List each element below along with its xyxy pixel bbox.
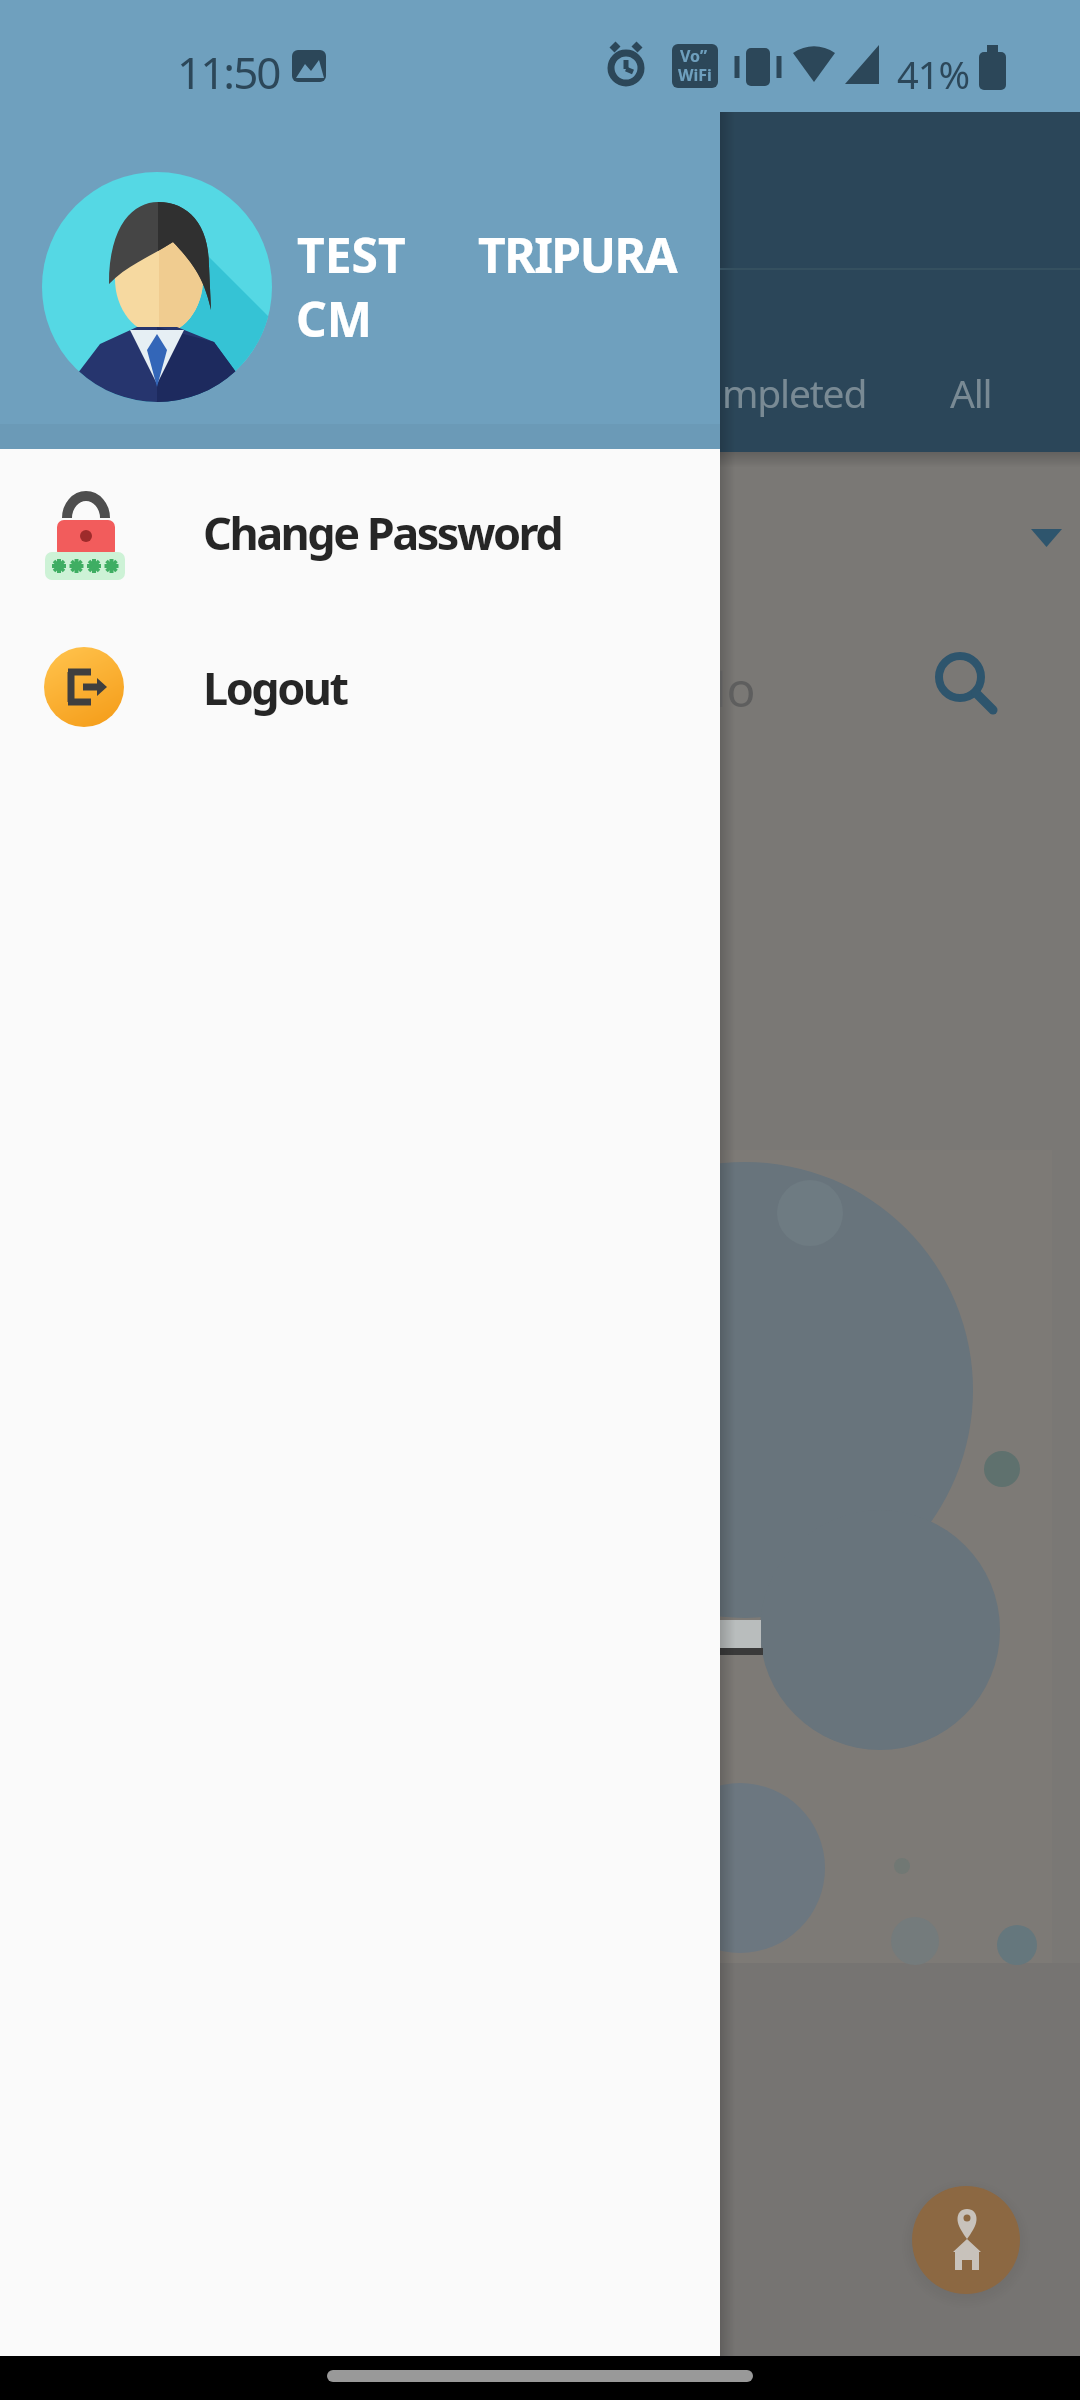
- staticText: TEST: [297, 222, 406, 287]
- staticText: Logout: [203, 657, 347, 718]
- staticText: 41%: [897, 48, 970, 100]
- staticText: WiFi: [678, 64, 712, 86]
- staticText: CM: [296, 286, 373, 351]
- button[interactable]: Change Password: [0, 462, 720, 602]
- button[interactable]: Logout: [0, 617, 720, 757]
- staticText: mpleted: [722, 366, 867, 419]
- button[interactable]: [912, 2186, 1020, 2294]
- staticText: TRIPURA: [478, 222, 677, 287]
- staticText: Voʺ: [680, 45, 708, 67]
- staticText: All: [950, 366, 992, 419]
- staticText: Change Password: [203, 502, 562, 563]
- staticText: lo: [714, 656, 756, 721]
- staticText: 11:50: [177, 42, 280, 102]
